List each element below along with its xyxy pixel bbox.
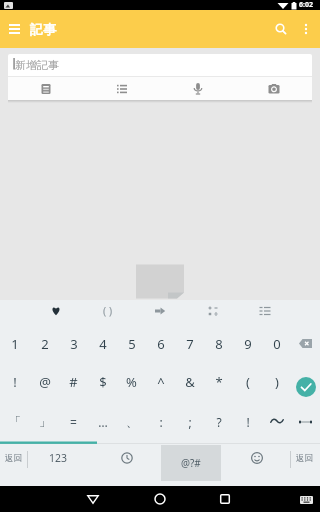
staticText: 1 — [11, 335, 19, 353]
button[interactable]: ; — [175, 411, 204, 432]
button[interactable]: 9 — [233, 333, 262, 354]
staticText: 3 — [70, 335, 78, 353]
button[interactable] — [240, 441, 274, 475]
staticText: % — [126, 373, 137, 391]
button[interactable]: 返回 — [0, 441, 27, 475]
button[interactable]: 123 — [28, 441, 88, 475]
button[interactable] — [262, 411, 291, 432]
staticText: 5 — [128, 335, 136, 353]
button[interactable]: & — [175, 371, 204, 392]
button[interactable] — [146, 300, 173, 322]
staticText: 2 — [41, 335, 49, 353]
staticText: & — [185, 373, 195, 391]
button[interactable]: * — [204, 371, 233, 392]
staticText: : — [159, 414, 163, 430]
button[interactable]: 0 — [262, 333, 291, 354]
button[interactable] — [295, 376, 316, 397]
staticText: 「 — [9, 414, 21, 429]
button[interactable] — [269, 17, 293, 41]
button[interactable]: # — [59, 371, 88, 392]
staticText: 6 — [157, 335, 165, 353]
staticText: ! — [13, 373, 17, 391]
button[interactable]: = — [59, 411, 88, 432]
button[interactable] — [251, 300, 278, 322]
staticText: 8 — [215, 335, 223, 353]
button[interactable]: 2 — [30, 333, 59, 354]
button[interactable]: 1 — [0, 333, 30, 354]
button[interactable] — [84, 77, 160, 100]
staticText: ! — [246, 414, 250, 430]
button[interactable] — [262, 410, 291, 431]
button[interactable]: ( — [233, 371, 262, 392]
button[interactable] — [78, 486, 107, 512]
button[interactable]: … — [88, 411, 117, 432]
staticText: 7 — [186, 335, 194, 353]
staticText: 返回 — [296, 453, 313, 464]
staticText: 」 — [39, 414, 51, 429]
staticText: 返回 — [5, 453, 22, 464]
button[interactable]: ( ) — [94, 300, 121, 322]
button[interactable]: ^ — [146, 371, 175, 392]
button[interactable]: $ — [88, 371, 117, 392]
staticText: 0 — [273, 335, 281, 353]
button[interactable]: 6 — [146, 333, 175, 354]
button[interactable] — [199, 300, 226, 322]
staticText: ; — [188, 414, 192, 430]
button[interactable] — [146, 486, 174, 512]
button[interactable] — [110, 441, 144, 475]
button[interactable] — [211, 486, 239, 512]
button[interactable]: ! — [233, 411, 262, 432]
staticText: ( — [246, 373, 250, 391]
button[interactable] — [160, 77, 236, 100]
staticText: @ — [39, 373, 51, 391]
staticText: 123 — [49, 451, 68, 465]
button[interactable]: @ — [30, 371, 59, 392]
staticText: ^ — [157, 373, 165, 391]
staticText: 4 — [99, 335, 107, 353]
staticText: # — [69, 373, 78, 391]
staticText: = — [70, 414, 77, 430]
button[interactable] — [296, 493, 316, 507]
button[interactable] — [236, 77, 312, 100]
button[interactable] — [42, 300, 69, 322]
button[interactable]: 、 — [117, 411, 146, 432]
staticText: ( ) — [103, 304, 113, 318]
staticText: * — [215, 373, 223, 391]
button[interactable]: ? — [204, 411, 233, 432]
button[interactable]: @?# — [161, 445, 221, 481]
button[interactable]: 7 — [175, 333, 204, 354]
staticText: 6:02 — [299, 0, 313, 10]
button[interactable]: 4 — [88, 333, 117, 354]
staticText: 記事 — [30, 21, 56, 37]
button[interactable]: 5 — [117, 333, 146, 354]
staticText: @?# — [181, 456, 201, 470]
button[interactable]: 8 — [204, 333, 233, 354]
button[interactable] — [2, 17, 26, 41]
staticText: 、 — [126, 414, 138, 429]
button[interactable]: 返回 — [290, 441, 318, 475]
staticText: 新增記事 — [15, 58, 59, 72]
button[interactable] — [294, 17, 317, 40]
staticText: ? — [216, 414, 222, 430]
button[interactable]: 」 — [30, 411, 59, 432]
button[interactable] — [291, 411, 320, 432]
button[interactable]: 3 — [59, 333, 88, 354]
button[interactable]: ! — [0, 371, 30, 392]
staticText: … — [98, 414, 108, 430]
staticText: 9 — [244, 335, 252, 353]
button[interactable]: % — [117, 371, 146, 392]
button[interactable]: 「 — [0, 411, 30, 432]
staticText: ) — [275, 373, 279, 391]
button[interactable] — [8, 77, 84, 100]
button[interactable] — [291, 333, 320, 354]
staticText: $ — [99, 373, 107, 391]
button[interactable]: ) — [262, 371, 291, 392]
button[interactable]: : — [146, 411, 175, 432]
button[interactable]: 新增記事 — [8, 54, 312, 76]
